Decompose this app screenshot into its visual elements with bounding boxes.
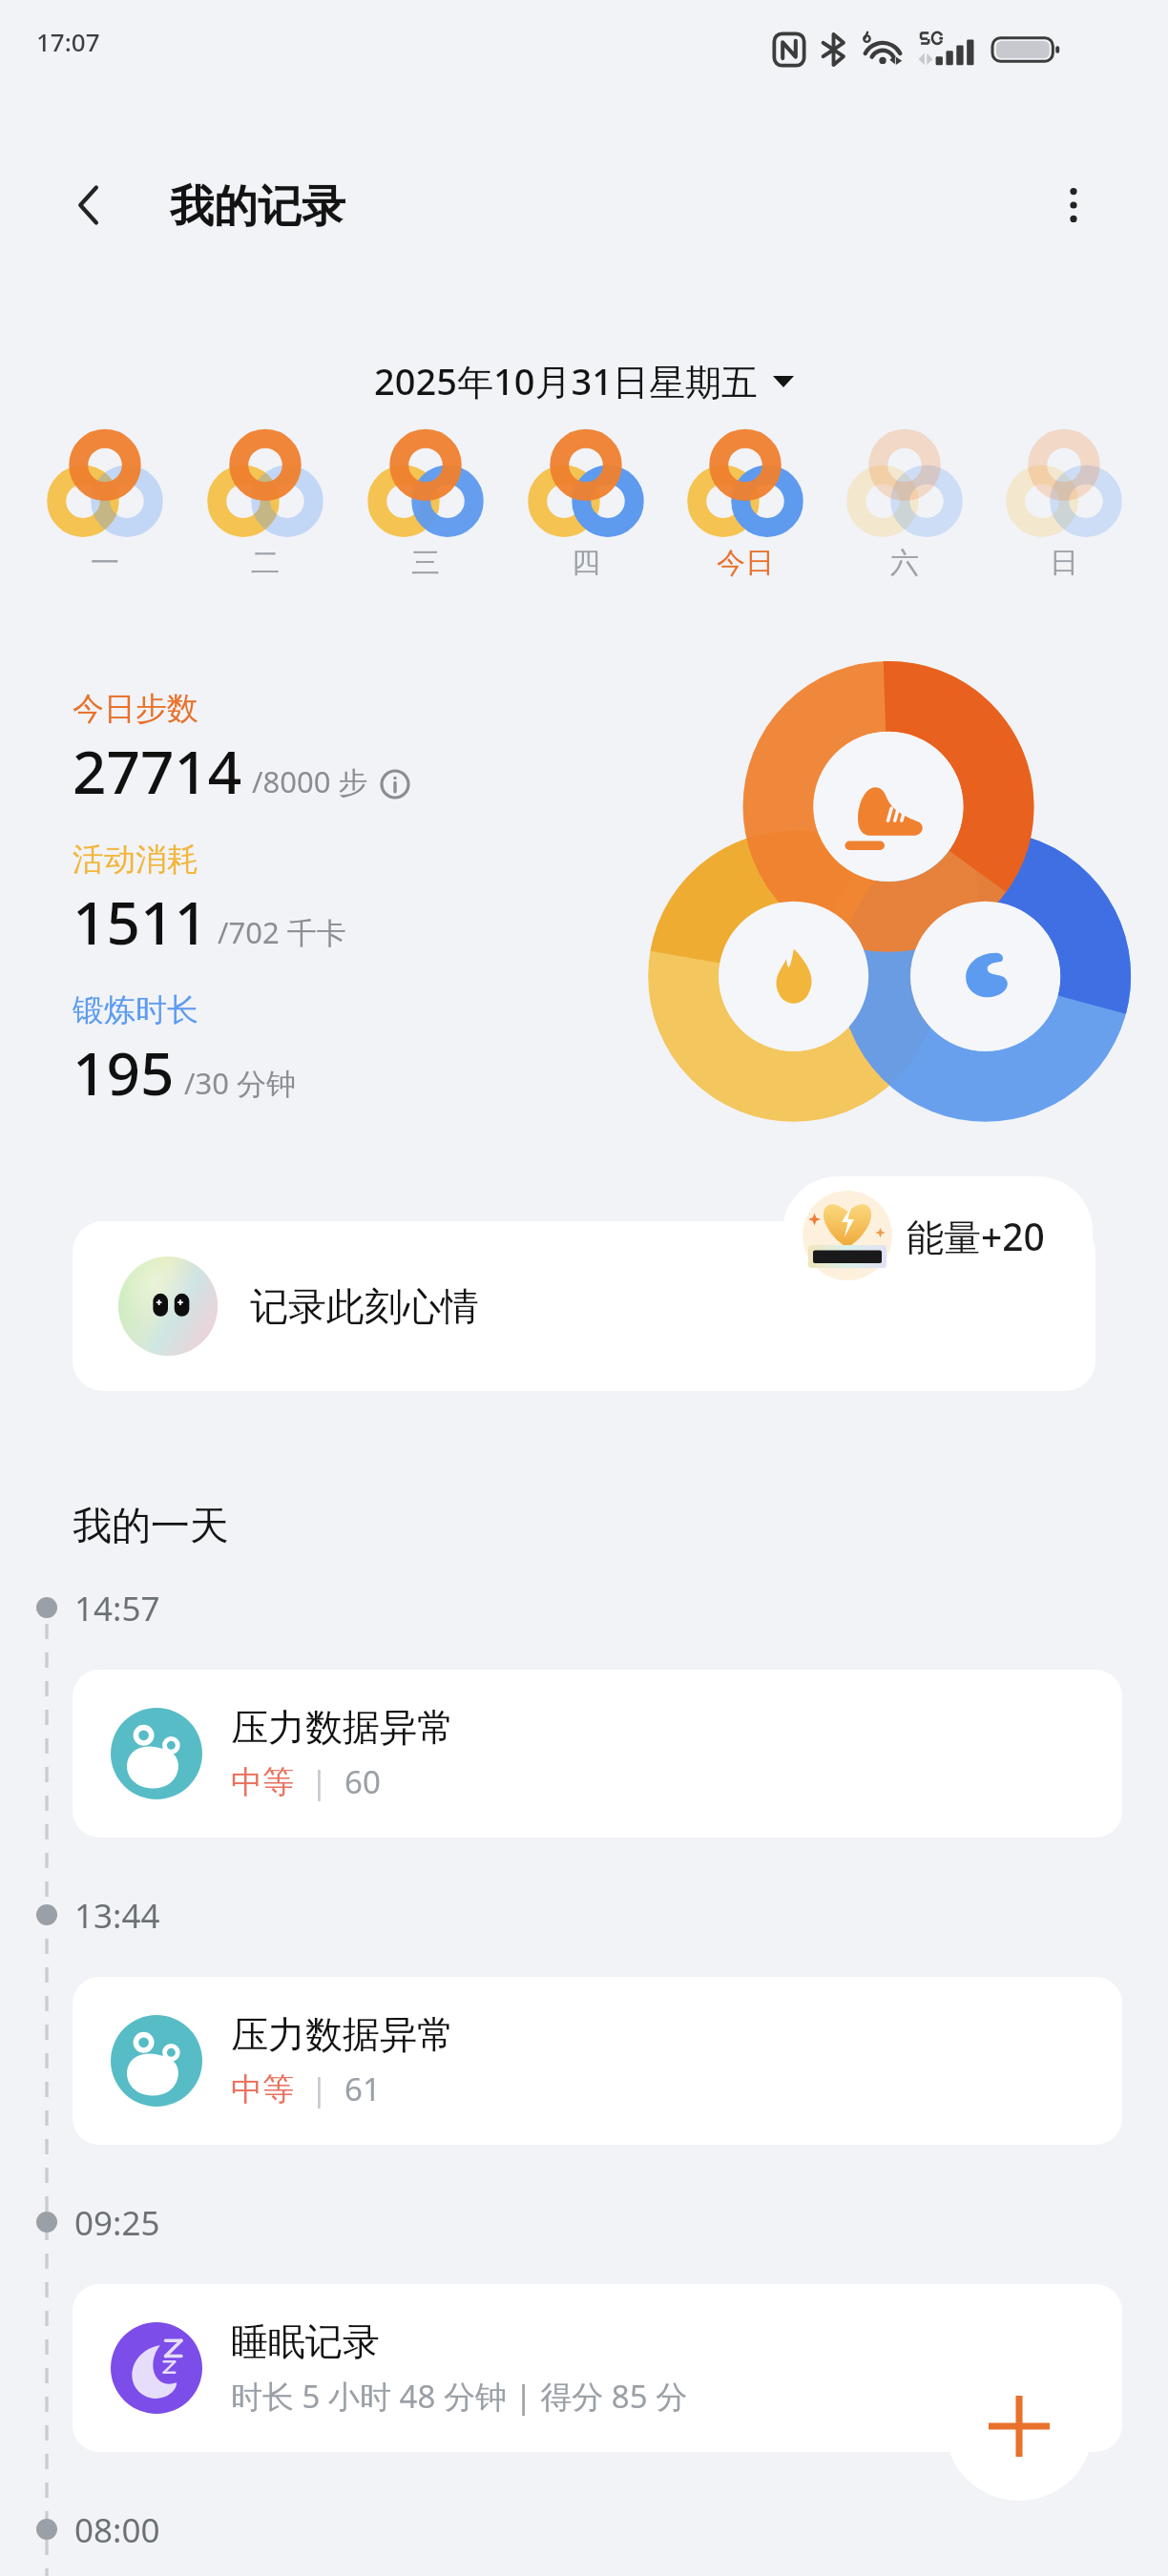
button[interactable]: 2025年10月31日星期五 bbox=[0, 351, 1168, 410]
button[interactable]: 三 bbox=[345, 434, 506, 581]
staticText: 二 bbox=[251, 545, 280, 581]
staticText: 记录此刻心情 bbox=[250, 1282, 479, 1330]
button[interactable]: 今日步数 bbox=[73, 689, 410, 811]
button[interactable]: Add record bbox=[945, 2352, 1094, 2501]
button[interactable]: 压力数据异常 bbox=[73, 1977, 1122, 2145]
staticText: 一 bbox=[91, 545, 119, 581]
button[interactable]: 压力数据异常 bbox=[73, 1670, 1122, 1838]
staticText: | bbox=[294, 2067, 344, 2110]
button[interactable]: 锻炼时长 bbox=[73, 990, 297, 1112]
staticText: 睡眠记录 bbox=[231, 2318, 380, 2365]
staticText: /8000 步 bbox=[252, 761, 368, 801]
staticText: 压力数据异常 bbox=[231, 1704, 454, 1751]
staticText: 195 bbox=[73, 1032, 175, 1112]
staticText: 中等 bbox=[231, 2069, 294, 2109]
button[interactable]: 四 bbox=[506, 434, 665, 581]
staticText: 2025年10月31日星期五 bbox=[374, 356, 758, 405]
staticText: 日 bbox=[1050, 545, 1078, 581]
staticText: 27714 bbox=[73, 731, 242, 811]
button[interactable]: 睡眠记录 bbox=[73, 2284, 1122, 2452]
staticText: 我的一天 bbox=[73, 1502, 229, 1551]
button[interactable]: 二 bbox=[185, 434, 345, 581]
staticText: 17:07 bbox=[36, 25, 100, 58]
staticText: 四 bbox=[572, 545, 600, 581]
staticText: 中等 bbox=[231, 1762, 294, 1802]
staticText: 压力数据异常 bbox=[231, 2011, 454, 2058]
staticText: 时长 5 小时 48 分钟 | 得分 85 分 bbox=[231, 2375, 688, 2418]
button[interactable]: 活动消耗 bbox=[73, 840, 346, 962]
staticText: 我的记录 bbox=[170, 179, 345, 235]
staticText: 13:44 bbox=[74, 1893, 160, 1937]
staticText: 能量+20 bbox=[907, 1211, 1045, 1261]
staticText: 今日步数 bbox=[73, 689, 198, 729]
staticText: /702 千卡 bbox=[218, 912, 346, 952]
button[interactable]: 能量+20 bbox=[782, 1176, 1093, 1295]
staticText: 六 bbox=[890, 545, 919, 581]
button[interactable]: 六 bbox=[824, 434, 984, 581]
button[interactable]: 记录此刻心情 bbox=[73, 1221, 1095, 1391]
button[interactable]: 今日 bbox=[665, 434, 824, 581]
button[interactable]: 日 bbox=[984, 434, 1143, 581]
staticText: | bbox=[294, 1760, 344, 1803]
staticText: 09:25 bbox=[74, 2200, 160, 2244]
staticText: 锻炼时长 bbox=[73, 990, 198, 1030]
staticText: 14:57 bbox=[74, 1586, 160, 1630]
staticText: 1511 bbox=[73, 882, 208, 962]
staticText: 三 bbox=[411, 545, 440, 581]
button[interactable]: 一 bbox=[25, 434, 185, 581]
button[interactable]: Back bbox=[53, 170, 124, 240]
button[interactable]: More options bbox=[1038, 170, 1109, 240]
staticText: 活动消耗 bbox=[73, 840, 198, 880]
staticText: 60 bbox=[344, 1760, 381, 1803]
staticText: /30 分钟 bbox=[184, 1063, 297, 1103]
staticText: 61 bbox=[344, 2067, 381, 2110]
staticText: 今日 bbox=[717, 545, 774, 581]
staticText: 08:00 bbox=[74, 2507, 160, 2551]
